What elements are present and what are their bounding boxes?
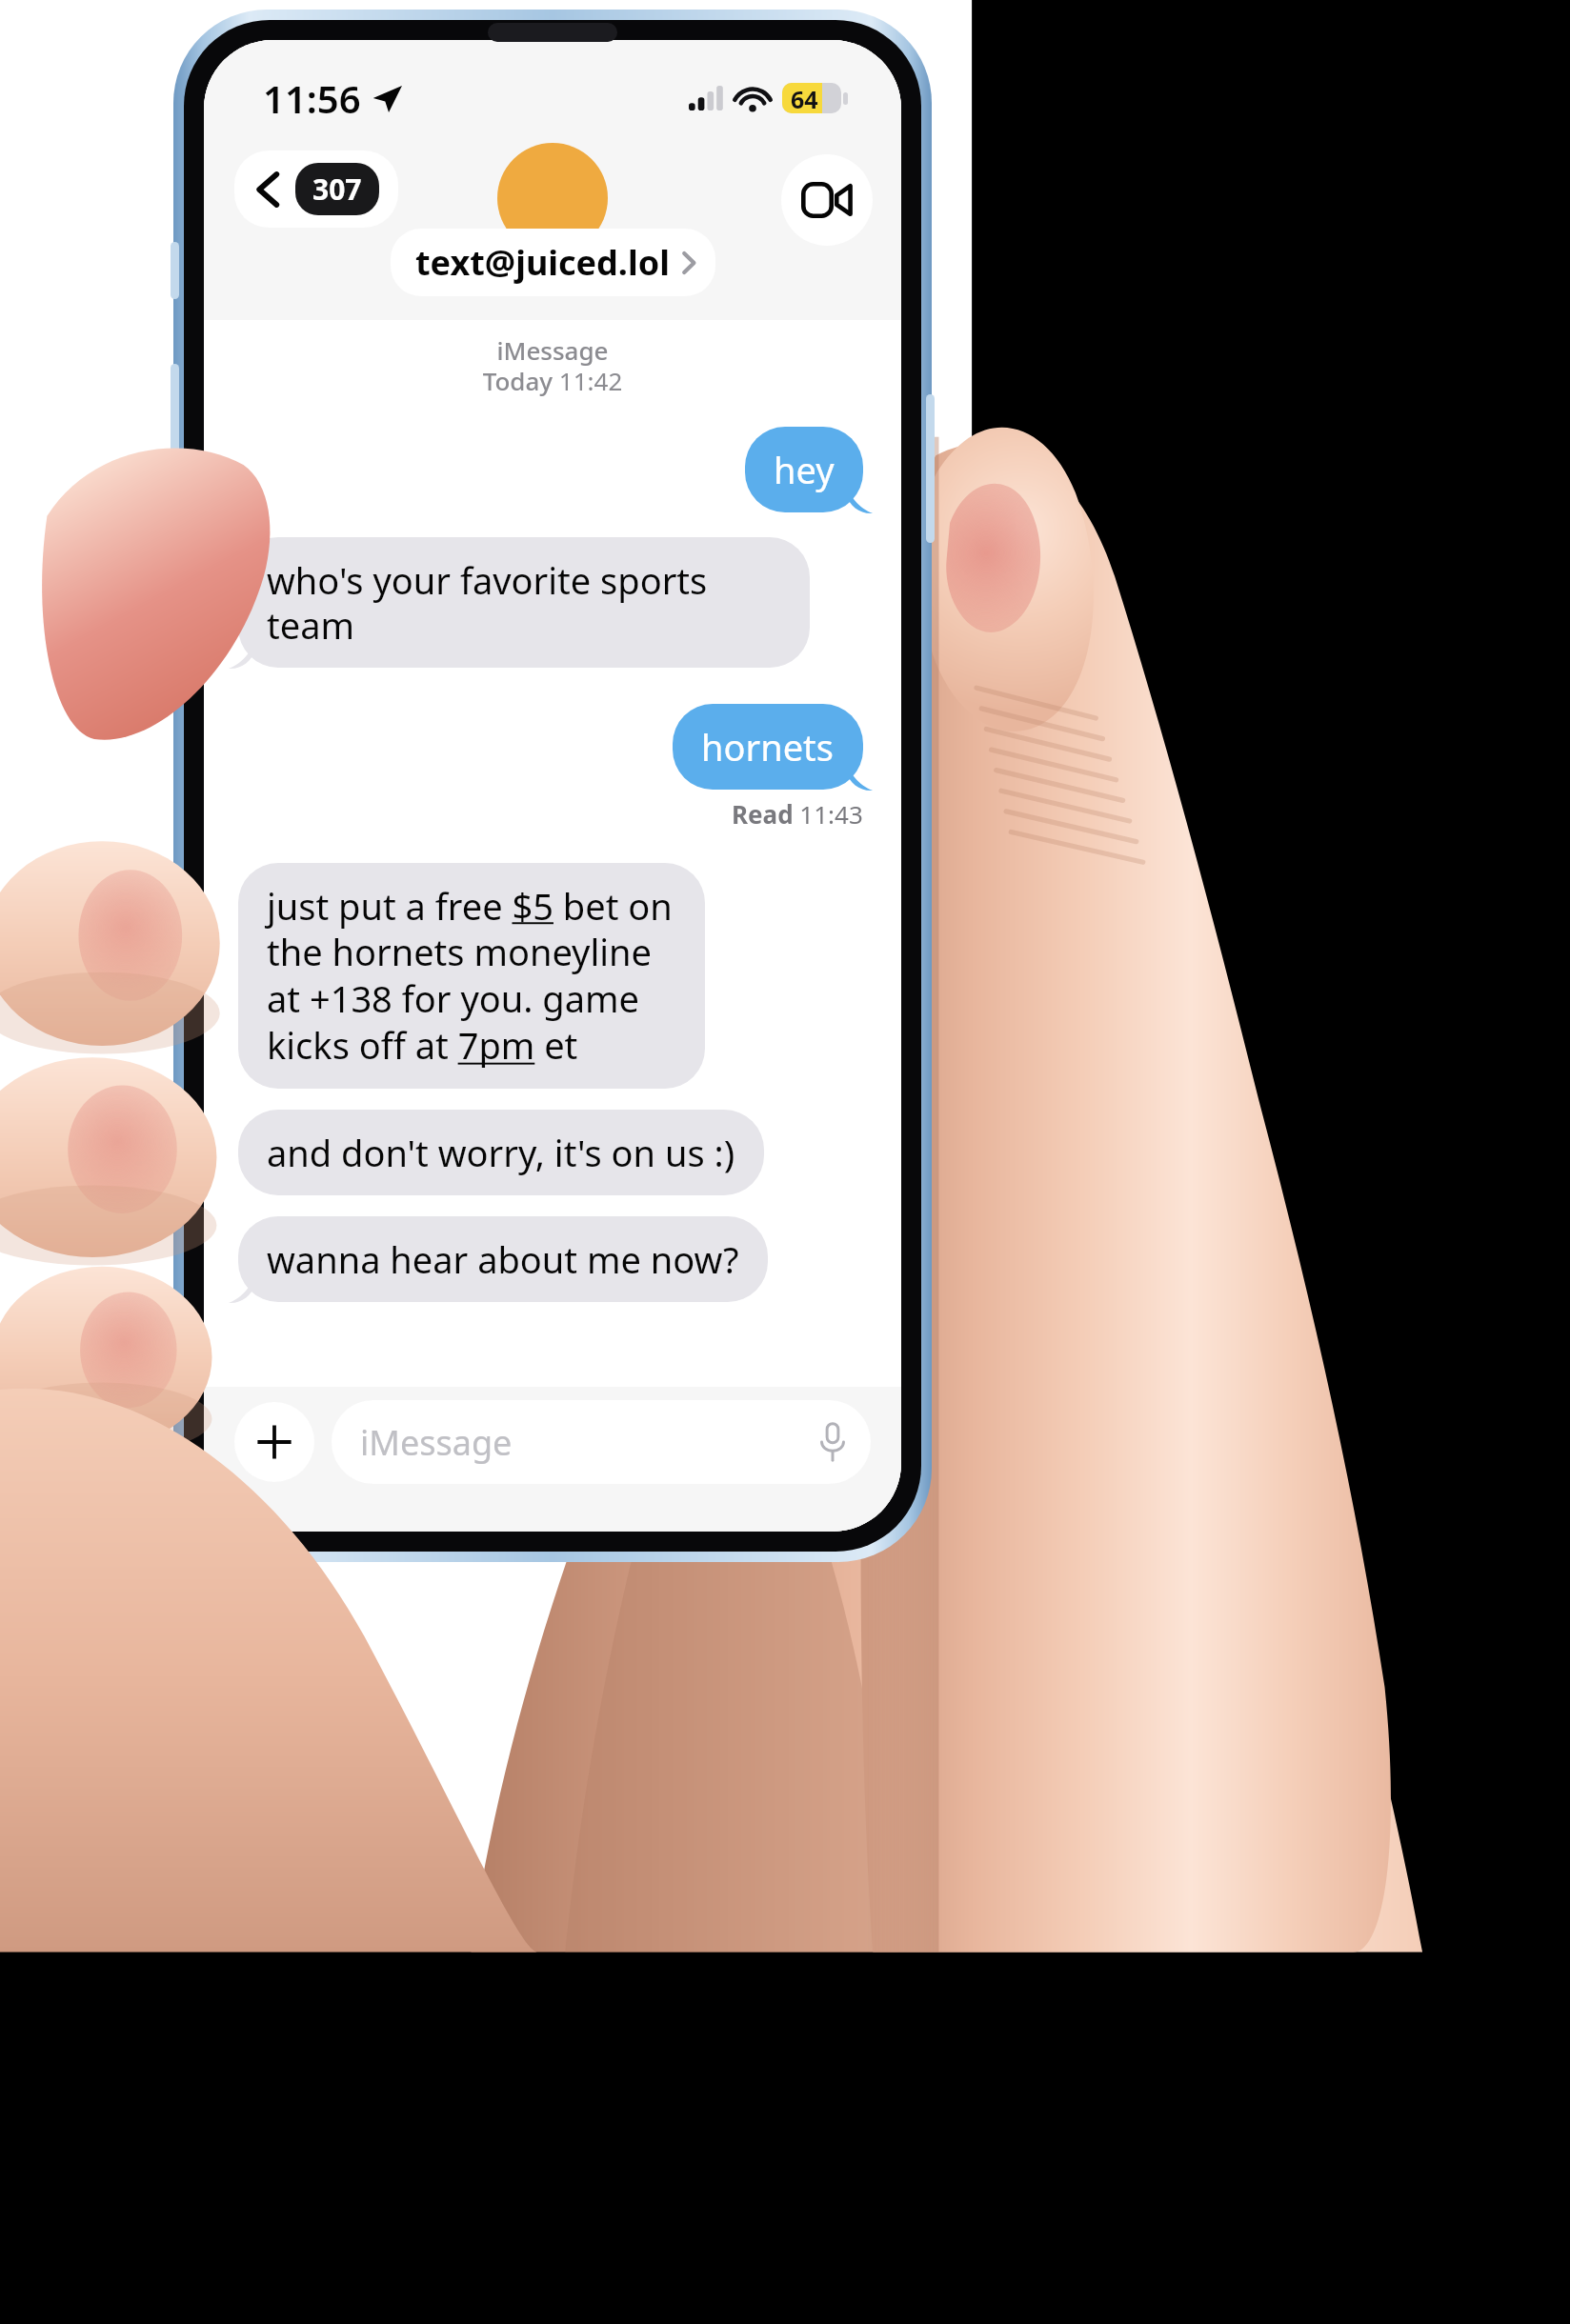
staticText: and don't worry, it's on us :)	[267, 1128, 735, 1177]
button[interactable]: who's your favorite sports team	[238, 537, 810, 668]
staticText: 11:56	[263, 72, 361, 124]
button[interactable]: and don't worry, it's on us :)	[238, 1110, 764, 1195]
staticText: wanna hear about me now?	[267, 1234, 739, 1284]
button[interactable]: text@juiced.lol	[391, 229, 715, 296]
staticText: iMessage	[360, 1419, 819, 1466]
button[interactable]: hey	[745, 427, 863, 512]
button[interactable]: Add attachment	[234, 1402, 314, 1482]
button[interactable]: Contact avatar	[497, 143, 608, 253]
button[interactable]: hornets	[673, 704, 863, 790]
button[interactable]: wanna hear about me now?	[238, 1216, 768, 1302]
button[interactable]: FaceTime video call	[781, 154, 873, 246]
staticText: hornets	[701, 722, 835, 771]
staticText: 307	[312, 170, 362, 209]
button[interactable]: Back to 307 conversations	[234, 150, 398, 228]
staticText: just put a free $5 bet on the hornets mo…	[267, 881, 676, 1071]
staticText: iMessage Today 11:42	[204, 333, 901, 398]
staticText: text@juiced.lol	[415, 239, 670, 286]
staticText: 64	[791, 83, 818, 113]
staticText: who's your favorite sports team	[267, 555, 781, 650]
button[interactable]: iMessage	[332, 1400, 871, 1484]
staticText: Read 11:43	[732, 797, 863, 831]
button[interactable]: just put a free $5 bet on the hornets mo…	[238, 863, 705, 1089]
staticText: hey	[774, 445, 835, 494]
